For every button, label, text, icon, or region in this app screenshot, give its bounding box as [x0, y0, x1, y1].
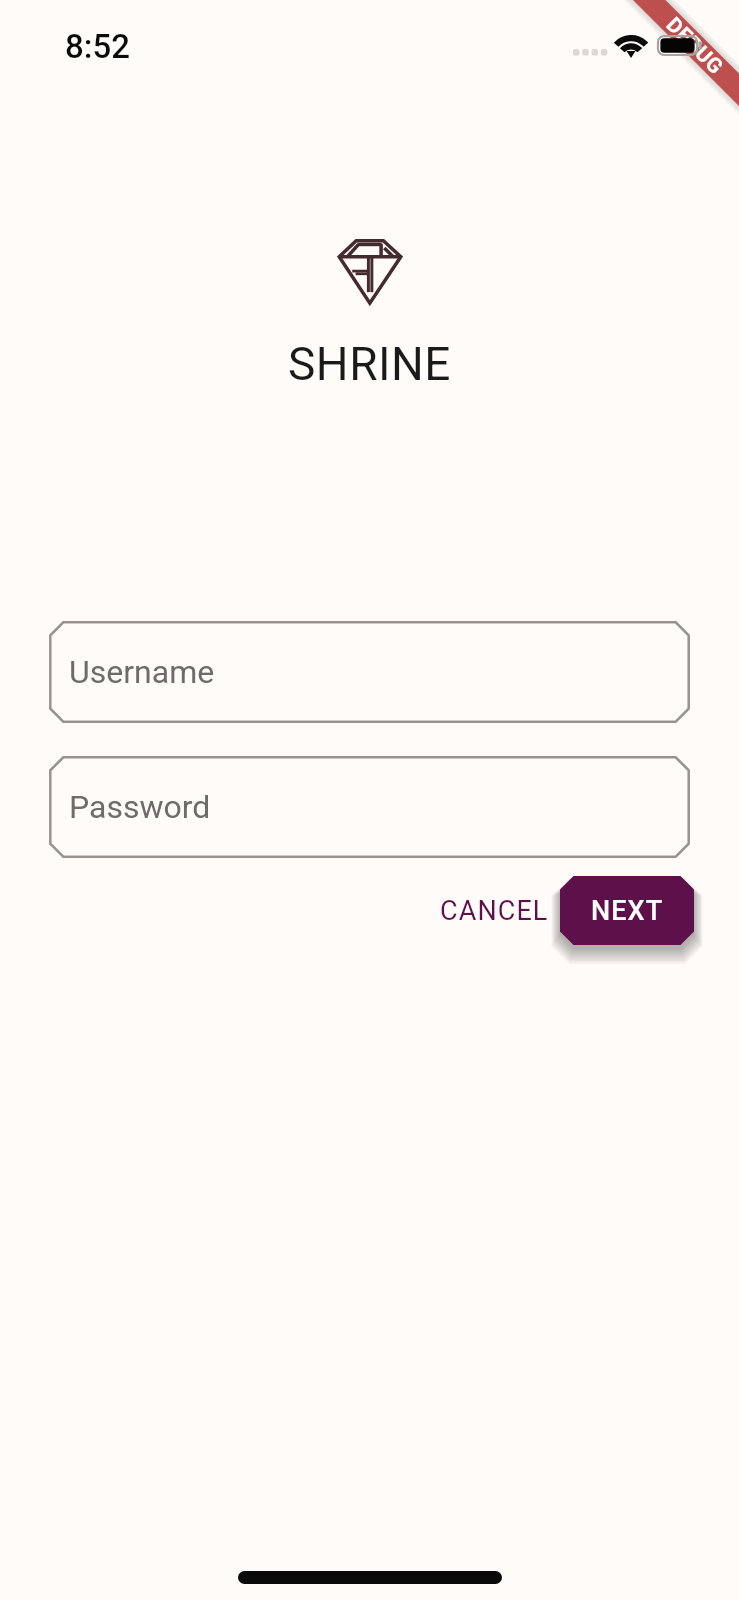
- staticText: NEXT: [591, 895, 664, 927]
- button[interactable]: NEXT: [560, 876, 694, 945]
- staticText: SHRINE: [288, 337, 451, 391]
- button[interactable]: Password: [49, 756, 690, 858]
- button[interactable]: Username: [49, 621, 690, 723]
- staticText: 8:52: [65, 27, 130, 66]
- staticText: Username: [69, 653, 215, 691]
- staticText: DEBUG: [661, 12, 729, 80]
- staticText: Password: [69, 788, 211, 826]
- staticText: CANCEL: [440, 895, 549, 927]
- button[interactable]: CANCEL: [418, 876, 571, 945]
